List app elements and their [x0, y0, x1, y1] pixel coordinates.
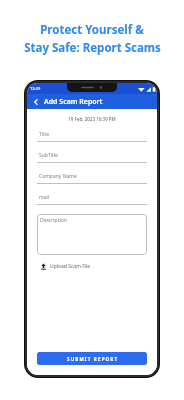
staticText: Title — [39, 131, 49, 138]
staticText: Description — [40, 217, 67, 224]
button[interactable]: SubTitle — [37, 152, 147, 163]
staticText: mail — [39, 194, 50, 201]
staticText: SubTitle — [39, 152, 58, 159]
staticText: Upload Scam File — [50, 263, 91, 270]
staticText: Add Scam Report — [44, 97, 103, 107]
staticText: Stay Safe: Report Scams — [24, 40, 161, 56]
button[interactable]: Upload Scam File — [40, 263, 91, 270]
staticText: Protect Yourself & — [40, 22, 144, 38]
button[interactable]: Description — [37, 214, 147, 255]
button[interactable]: Title — [37, 131, 147, 142]
button[interactable]: Back — [31, 97, 41, 107]
staticText: 19 Feb, 2023 10:39 PM — [37, 116, 147, 122]
button[interactable]: mail — [37, 194, 147, 205]
staticText: S U B M I T R E P O R T — [67, 356, 118, 362]
button[interactable]: Company Name — [37, 173, 147, 184]
staticText: 12:39 — [30, 86, 41, 91]
staticText: Company Name — [39, 173, 77, 180]
button[interactable]: S U B M I T R E P O R T — [37, 352, 147, 365]
